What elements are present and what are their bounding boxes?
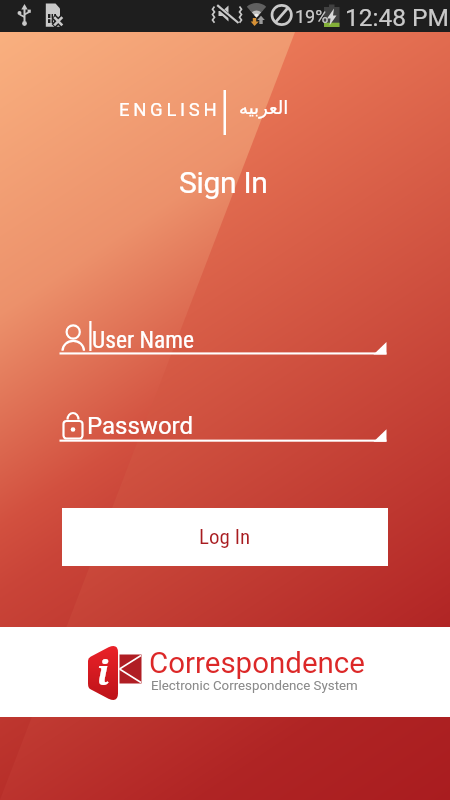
staticText: 19% [295, 6, 329, 27]
staticText: العربيه [239, 97, 289, 118]
staticText: 12:48 PM [345, 3, 449, 32]
staticText: Sign In [179, 165, 268, 200]
staticText: Password [87, 412, 194, 440]
button[interactable]: ENGLISH [110, 88, 295, 136]
staticText: ENGLISH [119, 99, 221, 121]
button[interactable]: Password [55, 402, 390, 447]
staticText: i [97, 649, 110, 695]
button[interactable]: Log In [62, 508, 388, 566]
staticText: Electronic Correspondence System [151, 678, 358, 694]
staticText: Correspondence [149, 646, 365, 681]
button[interactable]: User Name [55, 315, 390, 360]
staticText: User Name [92, 326, 195, 354]
staticText: Log In [199, 525, 251, 550]
